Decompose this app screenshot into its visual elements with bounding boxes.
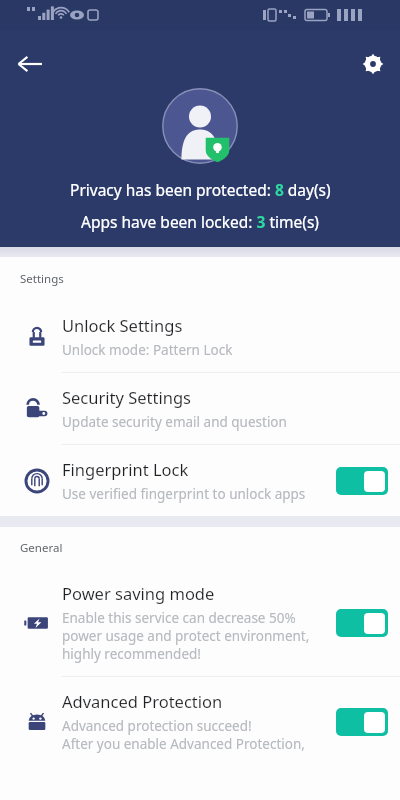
staticText: Unlock mode: Pattern Lock bbox=[62, 341, 233, 359]
staticText: Advanced Protection bbox=[62, 690, 223, 712]
staticText: Enable this service can decrease 50% pow… bbox=[62, 609, 330, 663]
staticText: Fingerprint Lock bbox=[62, 458, 189, 480]
staticText: Update security email and question bbox=[62, 413, 287, 431]
staticText: Settings bbox=[20, 271, 64, 287]
staticText: Security Settings bbox=[62, 386, 191, 408]
button[interactable]: Unlock Settings bbox=[0, 301, 400, 373]
button[interactable]: Toggle Fingerprint Lock bbox=[336, 467, 388, 495]
button[interactable]: Power saving mode bbox=[0, 569, 400, 677]
button[interactable]: Toggle Advanced Protection bbox=[336, 708, 388, 736]
button[interactable]: Fingerprint Lock bbox=[0, 445, 400, 516]
button[interactable]: Settings bbox=[351, 42, 395, 86]
staticText: Power saving mode bbox=[62, 582, 215, 604]
staticText: Privacy has been protected: 8 day(s) bbox=[70, 179, 331, 200]
staticText: Advanced protection succeed! After you e… bbox=[62, 717, 305, 753]
button[interactable]: Toggle Power saving mode bbox=[336, 609, 388, 637]
staticText: Unlock Settings bbox=[62, 314, 183, 336]
staticText: Apps have been locked: 3 time(s) bbox=[81, 211, 319, 232]
button[interactable]: Back bbox=[8, 42, 52, 86]
staticText: General bbox=[20, 540, 63, 556]
button[interactable]: Advanced Protection bbox=[0, 677, 400, 766]
staticText: Use verified fingerprint to unlock apps bbox=[62, 485, 306, 503]
button[interactable]: Security Settings bbox=[0, 373, 400, 445]
